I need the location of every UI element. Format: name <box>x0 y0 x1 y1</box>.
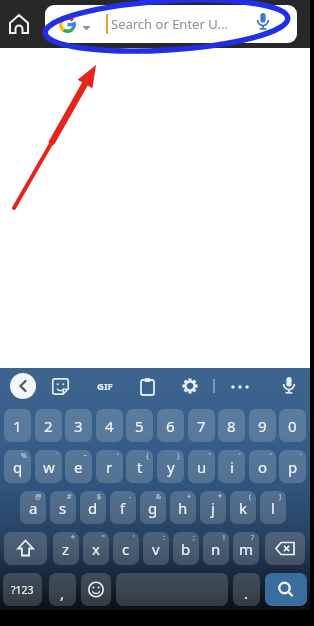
button[interactable]: c <box>113 532 139 565</box>
button[interactable] <box>7 12 31 36</box>
staticText: @ <box>35 492 42 502</box>
button[interactable]: h <box>170 491 196 524</box>
button[interactable] <box>265 532 305 565</box>
staticText: j <box>211 498 215 518</box>
staticText: ' <box>270 451 272 461</box>
staticText: b <box>181 539 191 559</box>
button[interactable]: k <box>230 491 256 524</box>
button[interactable]: 5 <box>126 409 153 442</box>
staticText: 8 <box>227 416 236 436</box>
button[interactable]: , <box>49 573 76 606</box>
button[interactable] <box>228 379 252 393</box>
button[interactable]: n <box>203 532 229 565</box>
staticText: x <box>92 539 100 559</box>
button[interactable]: w <box>35 450 62 483</box>
staticText: f <box>120 498 126 518</box>
button[interactable]: 1 <box>4 409 31 442</box>
button[interactable]: q <box>4 450 31 483</box>
button[interactable] <box>139 377 156 396</box>
staticText: ( <box>249 492 252 502</box>
button[interactable]: e <box>65 450 92 483</box>
button[interactable]: ?123 <box>3 573 42 606</box>
staticText: : <box>163 533 165 543</box>
staticText: 4 <box>105 416 114 436</box>
button[interactable]: Search or Enter U... <box>45 5 297 43</box>
button[interactable]: m <box>233 532 259 565</box>
button[interactable] <box>81 573 111 606</box>
staticText: * <box>71 533 75 543</box>
staticText: % <box>21 451 27 461</box>
staticText: ' <box>117 451 119 461</box>
staticText: s <box>59 498 67 518</box>
button[interactable] <box>265 573 307 606</box>
staticText: ! <box>223 533 225 543</box>
staticText: ) <box>279 492 282 502</box>
staticText: 0 <box>288 416 297 436</box>
staticText: u <box>197 457 207 477</box>
staticText: 7 <box>197 416 206 436</box>
staticText: + <box>187 492 192 502</box>
button[interactable]: s <box>50 491 76 524</box>
button[interactable] <box>278 375 300 399</box>
staticText: 9 <box>258 416 267 436</box>
staticText: n <box>211 539 221 559</box>
staticText: m <box>239 539 254 559</box>
button[interactable]: d <box>80 491 106 524</box>
button[interactable]: x <box>83 532 109 565</box>
button[interactable]: v <box>143 532 169 565</box>
button[interactable]: 9 <box>249 409 276 442</box>
staticText: e <box>74 457 83 477</box>
staticText: 6 <box>166 416 175 436</box>
button[interactable]: 4 <box>96 409 123 442</box>
button[interactable] <box>4 532 47 565</box>
button[interactable] <box>181 377 199 395</box>
staticText: g <box>148 498 158 518</box>
button[interactable]: 7 <box>188 409 215 442</box>
button[interactable]: . <box>233 573 260 606</box>
staticText: p <box>288 457 298 477</box>
staticText: ~ <box>83 451 88 461</box>
button[interactable]: 0 <box>279 409 306 442</box>
button[interactable] <box>250 11 276 37</box>
staticText: ? <box>251 533 255 543</box>
button[interactable]: i <box>218 450 245 483</box>
button[interactable] <box>10 373 36 399</box>
staticText: i <box>230 457 234 477</box>
button[interactable]: t <box>126 450 153 483</box>
button[interactable]: j <box>200 491 226 524</box>
staticText: v <box>152 539 160 559</box>
staticText: & <box>156 492 162 502</box>
button[interactable]: f <box>110 491 136 524</box>
button[interactable]: p <box>279 450 306 483</box>
button[interactable] <box>116 573 228 606</box>
button[interactable]: a <box>20 491 46 524</box>
staticText: ' <box>209 451 211 461</box>
button[interactable]: u <box>188 450 215 483</box>
button[interactable]: l <box>260 491 286 524</box>
button[interactable]: 3 <box>65 409 92 442</box>
button[interactable]: g <box>140 491 166 524</box>
button[interactable]: z <box>53 532 79 565</box>
button[interactable]: y <box>157 450 184 483</box>
staticText: ' <box>133 533 135 543</box>
staticText: o <box>258 457 268 477</box>
staticText: l <box>271 498 275 518</box>
button[interactable]: b <box>173 532 199 565</box>
staticText: $ <box>97 492 102 502</box>
button[interactable]: GIF <box>92 378 118 394</box>
staticText: a <box>29 498 38 518</box>
staticText: 3 <box>74 416 83 436</box>
button[interactable]: r <box>96 450 123 483</box>
staticText: w <box>43 457 55 477</box>
staticText: 1 <box>13 416 22 436</box>
button[interactable]: 8 <box>218 409 245 442</box>
button[interactable]: o <box>249 450 276 483</box>
button[interactable]: 6 <box>157 409 184 442</box>
staticText: # <box>67 492 72 502</box>
staticText: ` <box>56 451 58 461</box>
staticText: d <box>88 498 98 518</box>
staticText: r <box>106 457 113 477</box>
button[interactable] <box>51 377 70 396</box>
staticText: ; <box>193 533 195 543</box>
button[interactable]: 2 <box>35 409 62 442</box>
